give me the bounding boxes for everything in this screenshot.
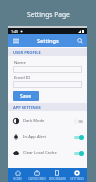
button[interactable]: Clear Local Cache (8, 145, 87, 161)
button[interactable]: Search (74, 35, 85, 46)
button[interactable]: Menu (10, 35, 21, 46)
staticText: Settings (37, 37, 59, 45)
staticText: Email ID (14, 75, 31, 81)
staticText: In-App Alert (23, 134, 47, 140)
staticText: SETTINGS (70, 177, 84, 181)
staticText: Save (20, 93, 32, 100)
button[interactable]: SETTINGS (67, 168, 87, 182)
button[interactable]: CATEGORIES (27, 168, 47, 182)
staticText: USER PROFILE (13, 50, 41, 55)
staticText: BOOKMARK (49, 177, 66, 181)
staticText: Name (14, 60, 26, 66)
button[interactable]: BOOKMARK (47, 168, 67, 182)
staticText: Dark Mode (23, 118, 45, 124)
button[interactable] (13, 81, 82, 88)
staticText: HOME (13, 177, 22, 181)
button[interactable]: In-App Alert (8, 129, 87, 145)
staticText: Clear Local Cache (23, 150, 57, 156)
button[interactable]: HOME (8, 168, 27, 182)
staticText: APP SETTINGS (13, 105, 41, 110)
staticText: 1:45 (11, 29, 19, 34)
staticText: Settings Page (27, 10, 70, 19)
button[interactable] (13, 66, 82, 73)
button[interactable]: Save (13, 91, 39, 101)
button[interactable]: Dark Mode (8, 113, 87, 129)
staticText: CATEGORIES (28, 177, 46, 181)
